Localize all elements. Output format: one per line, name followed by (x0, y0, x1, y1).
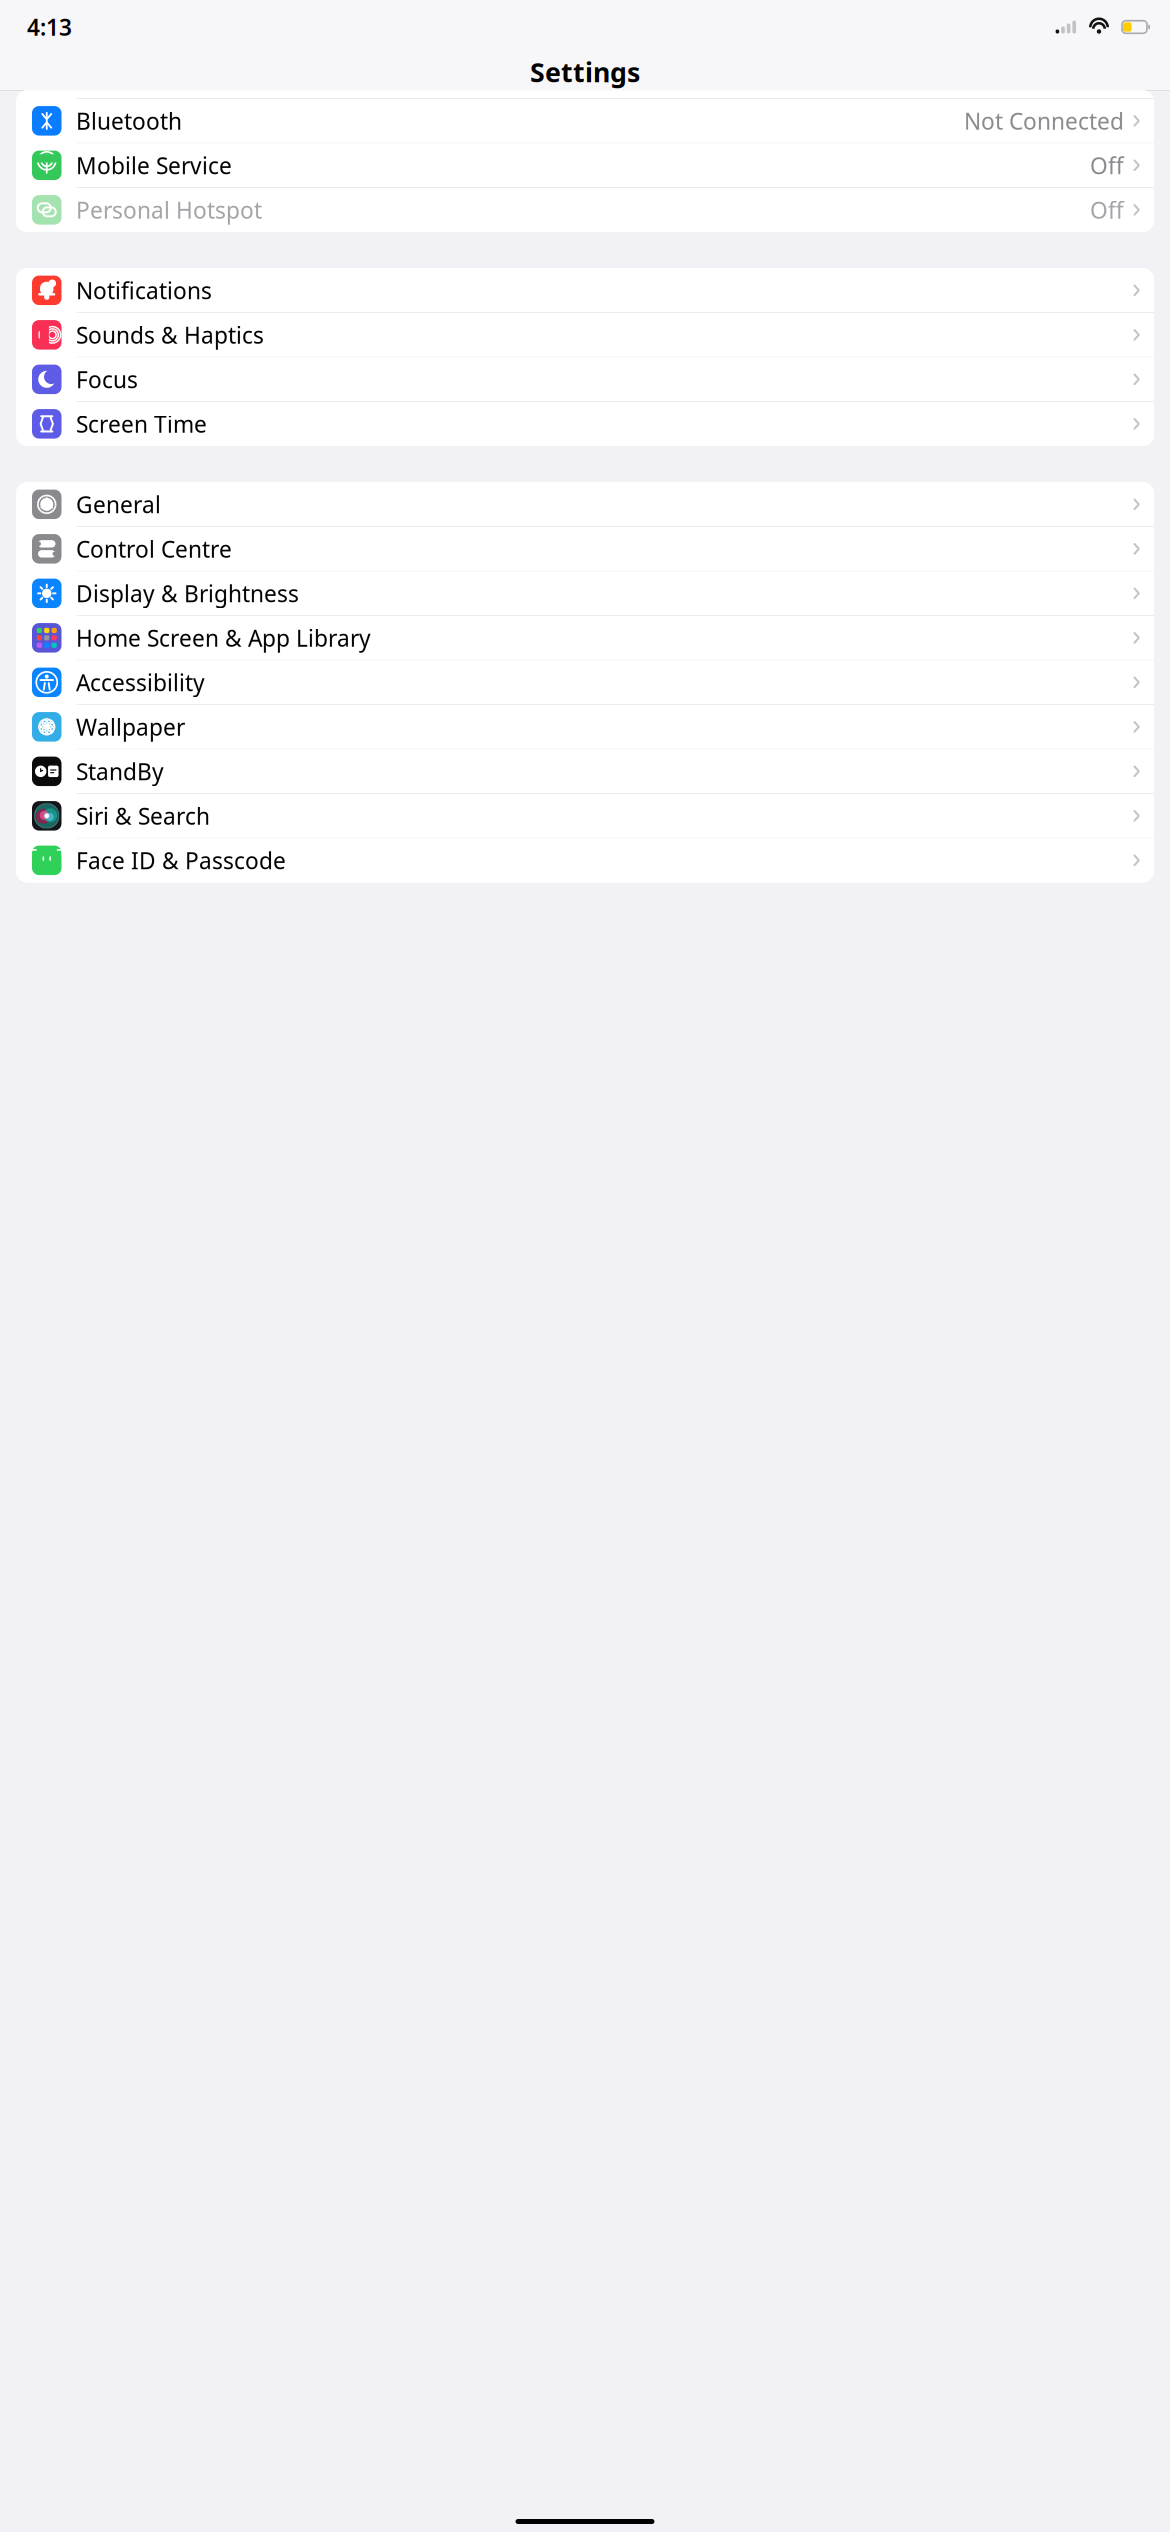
button[interactable]: Siri & Search (16, 794, 1154, 838)
button[interactable]: Sounds & Haptics (16, 313, 1154, 357)
button[interactable]: Home Screen & App Library (16, 616, 1154, 660)
staticText: Control Centre (76, 534, 232, 564)
staticText: Settings (530, 54, 640, 90)
staticText: Sounds & Haptics (76, 320, 264, 350)
staticText: Home Screen & App Library (76, 623, 371, 653)
staticText: Bluetooth (76, 106, 182, 136)
staticText: Not Connected (964, 106, 1124, 136)
button[interactable]: Bluetooth (16, 99, 1154, 143)
staticText: Siri & Search (76, 801, 210, 831)
staticText: Wallpaper (76, 712, 185, 742)
staticText: Accessibility (76, 667, 205, 697)
staticText: StandBy (76, 756, 164, 786)
staticText: Off (1090, 150, 1124, 180)
button[interactable]: Mobile Service (16, 143, 1154, 187)
button[interactable]: Face ID & Passcode (16, 838, 1154, 882)
button[interactable]: Settings (0, 54, 1170, 90)
button[interactable]: Display & Brightness (16, 571, 1154, 615)
button[interactable]: Control Centre (16, 527, 1154, 571)
staticText: 4:13 (27, 12, 72, 42)
button[interactable]: Screen Time (16, 402, 1154, 446)
button[interactable]: Wallpaper (16, 705, 1154, 749)
staticText: Display & Brightness (76, 578, 299, 608)
button[interactable]: Focus (16, 357, 1154, 401)
staticText: Focus (76, 364, 138, 394)
staticText: Mobile Service (76, 150, 232, 180)
button[interactable]: Accessibility (16, 660, 1154, 704)
button[interactable]: Personal Hotspot (16, 188, 1154, 232)
staticText: Notifications (76, 275, 212, 305)
staticText: Screen Time (76, 409, 207, 439)
staticText: Personal Hotspot (76, 195, 262, 225)
staticText: General (76, 489, 161, 519)
button[interactable]: General (16, 482, 1154, 526)
staticText: Off (1090, 195, 1124, 225)
button[interactable]: StandBy (16, 749, 1154, 793)
staticText: Face ID & Passcode (76, 845, 286, 875)
button[interactable]: Notifications (16, 268, 1154, 312)
